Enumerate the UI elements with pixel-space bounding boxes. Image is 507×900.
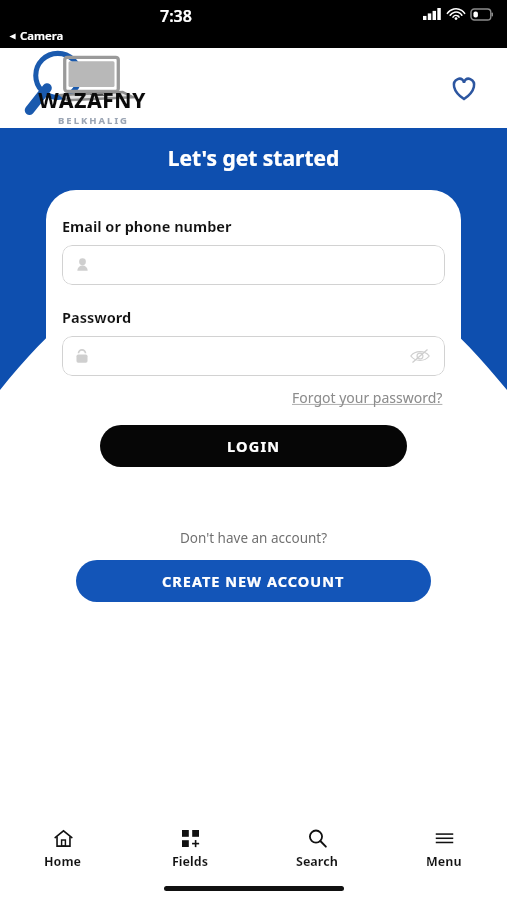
button[interactable]: Show password: [62, 336, 445, 376]
staticText: Search: [296, 853, 338, 870]
button[interactable]: LOGIN: [100, 425, 407, 467]
staticText: CREATE NEW ACCOUNT: [162, 571, 345, 591]
staticText: WAZAFNY: [38, 86, 147, 115]
staticText: Fields: [172, 853, 208, 870]
staticText: Password: [62, 307, 132, 327]
staticText: Email or phone number: [62, 216, 232, 236]
button[interactable]: Home: [0, 820, 126, 876]
staticText: Don't have an account?: [0, 529, 507, 547]
staticText: LOGIN: [227, 436, 281, 456]
staticText: Camera: [20, 28, 64, 44]
staticText: Let's get started: [0, 144, 507, 173]
button[interactable]: Menu: [380, 820, 507, 876]
button[interactable]: Favorites: [443, 67, 485, 109]
staticText: Menu: [426, 853, 462, 870]
button[interactable]: Show password: [409, 345, 431, 367]
button[interactable]: [62, 245, 445, 285]
button[interactable]: Search: [253, 820, 380, 876]
staticText: Forgot your password?: [292, 388, 443, 407]
staticText: Home: [44, 853, 82, 870]
staticText: 7:38: [160, 5, 192, 27]
button[interactable]: Fields: [126, 820, 253, 876]
staticText: BELKHALIG: [58, 114, 129, 127]
button[interactable]: Forgot your password?: [290, 386, 445, 409]
button[interactable]: CREATE NEW ACCOUNT: [76, 560, 431, 602]
